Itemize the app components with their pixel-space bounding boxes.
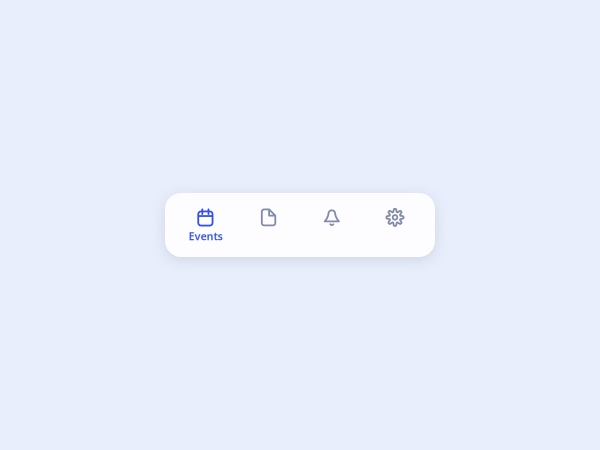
button[interactable]: Events (174, 193, 237, 257)
button[interactable]: Notifications (300, 193, 363, 257)
staticText: Events (188, 229, 222, 243)
button[interactable]: Documents (237, 193, 300, 257)
button[interactable]: Settings (363, 193, 427, 257)
